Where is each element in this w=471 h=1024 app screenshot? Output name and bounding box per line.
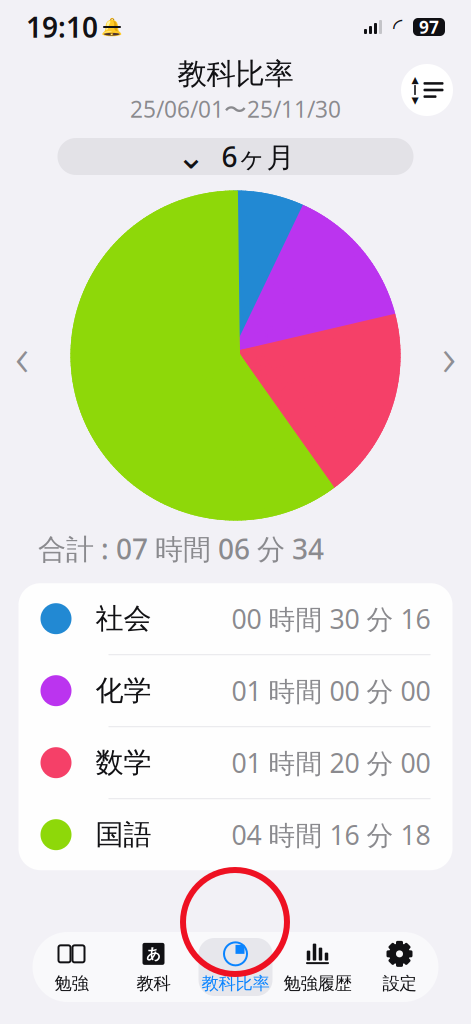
- staticText: ▼: [411, 95, 418, 106]
- button[interactable]: 勉強履歴: [280, 938, 354, 996]
- staticText: 04 時間 16 分 18: [231, 817, 430, 852]
- staticText: 教科比率: [201, 973, 269, 994]
- staticText: 社会: [95, 601, 151, 636]
- staticText: 01 時間 00 分 00: [231, 673, 430, 708]
- staticText: ◜: [393, 13, 402, 41]
- staticText: 化学: [95, 673, 151, 708]
- button[interactable]: 次の期間: [427, 325, 471, 385]
- staticText: ›: [442, 320, 456, 391]
- staticText: 01 時間 20 分 00: [231, 745, 430, 780]
- staticText: 教科: [136, 973, 170, 994]
- staticText: 数学: [95, 745, 151, 780]
- staticText: 勉強: [54, 973, 88, 994]
- button[interactable]: 並び替え: [397, 60, 457, 120]
- staticText: あ: [146, 945, 161, 963]
- button[interactable]: 設定: [362, 938, 436, 996]
- button[interactable]: 社会: [18, 583, 452, 654]
- staticText: 🔔: [101, 17, 123, 37]
- staticText: 勉強履歴: [283, 973, 351, 994]
- button[interactable]: あ: [116, 938, 190, 996]
- button[interactable]: 教科比率: [198, 938, 272, 996]
- button[interactable]: 前の期間: [0, 325, 44, 385]
- button[interactable]: ⌄: [57, 138, 413, 175]
- staticText: 97: [419, 15, 439, 38]
- button[interactable]: 数学: [18, 727, 452, 798]
- staticText: ▲: [411, 74, 418, 85]
- staticText: 国語: [95, 817, 151, 852]
- staticText: ‹: [15, 320, 29, 391]
- staticText: ⌄: [176, 137, 205, 176]
- button[interactable]: 国語: [18, 799, 452, 870]
- staticText: 19:10: [26, 8, 98, 46]
- staticText: 6ヶ月: [221, 138, 294, 175]
- staticText: 25/06/01〜25/11/30: [130, 94, 341, 124]
- staticText: 合計 : 07 時間 06 分 34: [38, 530, 324, 567]
- staticText: 設定: [382, 973, 416, 994]
- button[interactable]: 勉強: [34, 938, 108, 996]
- staticText: 00 時間 30 分 16: [231, 601, 430, 636]
- staticText: 教科比率: [177, 56, 293, 92]
- button[interactable]: 化学: [18, 655, 452, 726]
